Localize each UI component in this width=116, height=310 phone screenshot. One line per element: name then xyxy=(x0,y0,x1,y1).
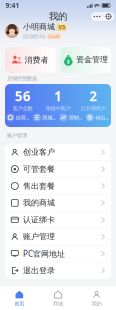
staticText: 营销活动 xyxy=(69,114,83,121)
staticText: 账户管理 xyxy=(23,232,55,242)
button[interactable]: 1 xyxy=(40,88,76,111)
staticText: PC官网地址 xyxy=(23,248,65,259)
staticText: 1 xyxy=(54,87,62,105)
staticText: 创业客户 xyxy=(23,147,55,157)
button[interactable]: 首页 xyxy=(0,287,39,310)
staticText: 店铺经营数据 xyxy=(7,75,37,82)
staticText: 商城 xyxy=(53,300,63,307)
button[interactable]: ¥ xyxy=(60,47,111,73)
staticText: ¥ xyxy=(67,58,70,65)
button[interactable]: 认证绑卡 xyxy=(5,212,111,228)
button[interactable]: 消费者 xyxy=(5,47,55,73)
staticText: 2 xyxy=(89,87,97,105)
staticText: 我的 xyxy=(92,300,102,307)
button[interactable]: 营销活动 xyxy=(58,111,84,124)
staticText: 账户管理 xyxy=(7,132,27,139)
button[interactable]: 创业客户 xyxy=(5,144,111,161)
button[interactable]: 退出登录 xyxy=(5,262,111,279)
staticText: V xyxy=(58,23,61,30)
staticText: 消费者 xyxy=(24,55,48,65)
button[interactable]: Settings xyxy=(103,12,114,20)
staticText: 9:41 xyxy=(5,1,19,10)
staticText: 待出订单 xyxy=(95,114,110,121)
staticText: 我的商城 xyxy=(23,198,55,208)
staticText: 小明商城 xyxy=(23,22,55,32)
staticText: 56 xyxy=(15,87,31,105)
staticText: 审核中商户 xyxy=(45,105,70,112)
button[interactable]: PC官网地址 xyxy=(5,245,111,262)
staticText: 已认证 xyxy=(48,34,60,39)
staticText: 我的 xyxy=(49,11,67,22)
staticText: 商城订单 xyxy=(42,114,57,121)
button[interactable]: 售出套餐 xyxy=(5,178,111,195)
staticText: 首页 xyxy=(14,300,24,307)
staticText: 3 xyxy=(62,23,65,30)
button[interactable]: More xyxy=(91,12,102,20)
button[interactable]: 我的商城 xyxy=(5,195,111,212)
staticText: 自营商品 xyxy=(16,114,30,121)
staticText: 已开通商户 xyxy=(81,105,106,112)
button[interactable]: 待出订单 xyxy=(84,111,111,124)
staticText: 客户总数 xyxy=(13,105,33,112)
button[interactable]: 商城订单 xyxy=(31,111,58,124)
button[interactable]: 自营商品 xyxy=(5,111,31,124)
staticText: ID:88516 xyxy=(23,33,45,40)
button[interactable]: 可管套餐 xyxy=(5,161,111,178)
button[interactable]: 商城 xyxy=(39,287,77,310)
staticText: 认证绑卡 xyxy=(23,215,55,225)
button[interactable]: 2 xyxy=(76,88,111,111)
button[interactable]: 账户管理 xyxy=(5,228,111,245)
staticText: 资金管理 xyxy=(76,55,108,65)
staticText: 退出登录 xyxy=(23,266,55,275)
staticText: 可管套餐 xyxy=(23,164,55,174)
button[interactable]: 我的 xyxy=(77,287,116,310)
staticText: 售出套餐 xyxy=(23,181,55,191)
button[interactable]: 56 xyxy=(5,88,40,111)
